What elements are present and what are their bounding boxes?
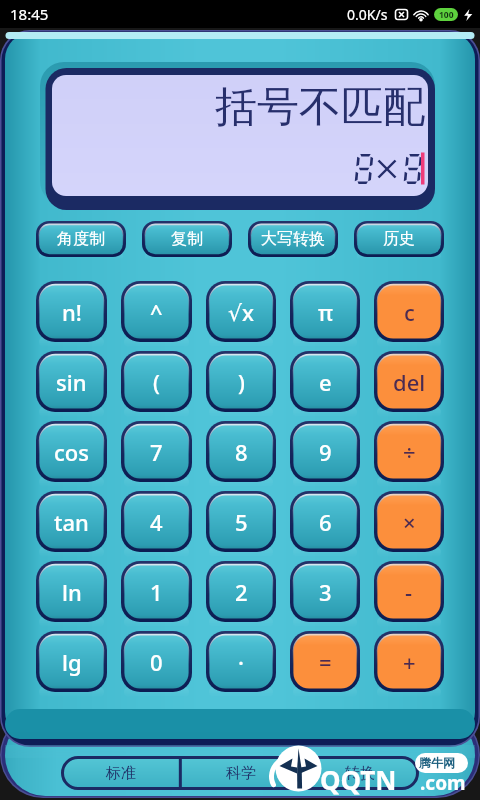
staticText: c <box>404 297 415 327</box>
staticText: tan <box>54 507 89 537</box>
button[interactable]: c <box>374 281 444 347</box>
button[interactable]: 标准 <box>61 756 181 790</box>
button[interactable]: del <box>374 351 444 417</box>
staticText: 0 <box>150 647 163 677</box>
staticText: √x <box>228 297 254 327</box>
staticText: 转换 <box>345 764 375 783</box>
staticText: 8 <box>235 437 248 467</box>
button[interactable]: 8 <box>206 421 276 487</box>
button[interactable]: · <box>206 631 276 697</box>
staticText: 7 <box>150 437 163 467</box>
button[interactable]: 6 <box>290 491 360 557</box>
button[interactable]: 4 <box>121 491 192 557</box>
button[interactable]: 1 <box>121 561 192 627</box>
staticText: 标准 <box>106 764 136 783</box>
staticText: 腾牛网 <box>419 755 455 770</box>
staticText: + <box>403 647 416 677</box>
button[interactable]: ( <box>121 351 192 417</box>
button[interactable]: 9 <box>290 421 360 487</box>
button[interactable]: π <box>290 281 360 347</box>
staticText: del <box>393 367 426 397</box>
staticText: ÷ <box>403 437 416 467</box>
button[interactable]: 0 <box>121 631 192 697</box>
button[interactable]: 复制 <box>142 221 232 259</box>
staticText: 9 <box>319 437 332 467</box>
staticText: 5 <box>235 507 248 537</box>
button[interactable]: 大写转换 <box>248 221 338 259</box>
button[interactable]: 2 <box>206 561 276 627</box>
staticText: 0.0K/s <box>347 5 388 24</box>
button[interactable]: 角度制 <box>36 221 126 259</box>
staticText: 2 <box>235 577 248 607</box>
button[interactable]: ) <box>206 351 276 417</box>
button[interactable]: √x <box>206 281 276 347</box>
staticText: sin <box>56 367 87 397</box>
button[interactable]: e <box>290 351 360 417</box>
staticText: π <box>318 297 333 327</box>
button[interactable]: 科学 <box>181 756 300 790</box>
button[interactable]: ÷ <box>374 421 444 487</box>
staticText: 复制 <box>171 229 203 249</box>
button[interactable]: - <box>374 561 444 627</box>
button[interactable]: 3 <box>290 561 360 627</box>
button[interactable]: tan <box>36 491 107 557</box>
button[interactable]: 5 <box>206 491 276 557</box>
button[interactable]: × <box>374 491 444 557</box>
button[interactable]: + <box>374 631 444 697</box>
staticText: ln <box>62 577 82 607</box>
button[interactable]: cos <box>36 421 107 487</box>
staticText: 18:45 <box>10 4 49 24</box>
button[interactable]: ^ <box>121 281 192 347</box>
staticText: 6 <box>319 507 332 537</box>
button[interactable]: ln <box>36 561 107 627</box>
staticText: 括号不匹配 <box>215 81 425 134</box>
button[interactable]: lg <box>36 631 107 697</box>
staticText: × <box>403 507 416 537</box>
staticText: 角度制 <box>57 229 105 249</box>
staticText: QQTN <box>320 762 397 797</box>
staticText: 科学 <box>226 764 256 783</box>
staticText: ^ <box>150 297 163 327</box>
button[interactable]: = <box>290 631 360 697</box>
staticText: 3 <box>319 577 332 607</box>
staticText: 1 <box>150 577 163 607</box>
button[interactable]: sin <box>36 351 107 417</box>
staticText: = <box>319 647 332 677</box>
staticText: 4 <box>150 507 163 537</box>
staticText: 大写转换 <box>261 229 325 249</box>
staticText: · <box>238 647 244 677</box>
staticText: e <box>319 367 332 397</box>
staticText: n! <box>62 297 82 327</box>
staticText: - <box>405 577 413 607</box>
staticText: 100 <box>439 9 454 21</box>
staticText: 历史 <box>383 229 415 249</box>
staticText: .com <box>420 770 466 796</box>
staticText: cos <box>54 437 89 467</box>
button[interactable]: n! <box>36 281 107 347</box>
staticText: ( <box>153 367 160 397</box>
button[interactable]: 转换 <box>300 756 419 790</box>
button[interactable]: 7 <box>121 421 192 487</box>
staticText: lg <box>62 647 82 677</box>
staticText: ) <box>238 367 245 397</box>
button[interactable]: 历史 <box>354 221 444 259</box>
